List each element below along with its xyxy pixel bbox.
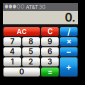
- staticText: 0: [19, 68, 24, 76]
- staticText: +: [66, 62, 72, 72]
- staticText: 5: [29, 47, 34, 56]
- button[interactable]: Equals: [41, 67, 59, 76]
- staticText: 9: [47, 37, 52, 46]
- staticText: C: [47, 27, 52, 36]
- button[interactable]: 4: [3, 47, 21, 56]
- staticText: 4: [10, 47, 15, 56]
- staticText: =: [47, 67, 52, 76]
- staticText: 8: [29, 37, 34, 46]
- staticText: AT&T: [26, 4, 38, 10]
- staticText: 0.: [65, 11, 76, 25]
- button[interactable]: 0: [3, 67, 40, 76]
- button[interactable]: Divide: [60, 27, 78, 36]
- staticText: /: [67, 26, 70, 37]
- button[interactable]: 6: [41, 47, 59, 56]
- staticText: ×: [66, 37, 71, 46]
- button[interactable]: C: [41, 27, 59, 36]
- staticText: ●●●○○: [5, 4, 25, 10]
- staticText: 1: [11, 57, 14, 66]
- staticText: 3: [47, 57, 52, 66]
- staticText: −: [66, 47, 72, 57]
- staticText: 3G: [39, 4, 46, 10]
- button[interactable]: 8: [22, 37, 40, 46]
- staticText: 7: [10, 37, 14, 46]
- staticText: AC: [17, 27, 27, 36]
- button[interactable]: AC: [3, 27, 40, 36]
- button[interactable]: Plus: [60, 57, 78, 76]
- button[interactable]: 5: [22, 47, 40, 56]
- button[interactable]: 2: [22, 57, 40, 66]
- button[interactable]: 7: [3, 37, 21, 46]
- staticText: 6: [47, 47, 52, 56]
- button[interactable]: Multiply: [60, 37, 78, 46]
- button[interactable]: 9: [41, 37, 59, 46]
- button[interactable]: 3: [41, 57, 59, 66]
- staticText: 2: [29, 57, 34, 66]
- button[interactable]: Minus: [60, 47, 78, 56]
- button[interactable]: 1: [3, 57, 21, 66]
